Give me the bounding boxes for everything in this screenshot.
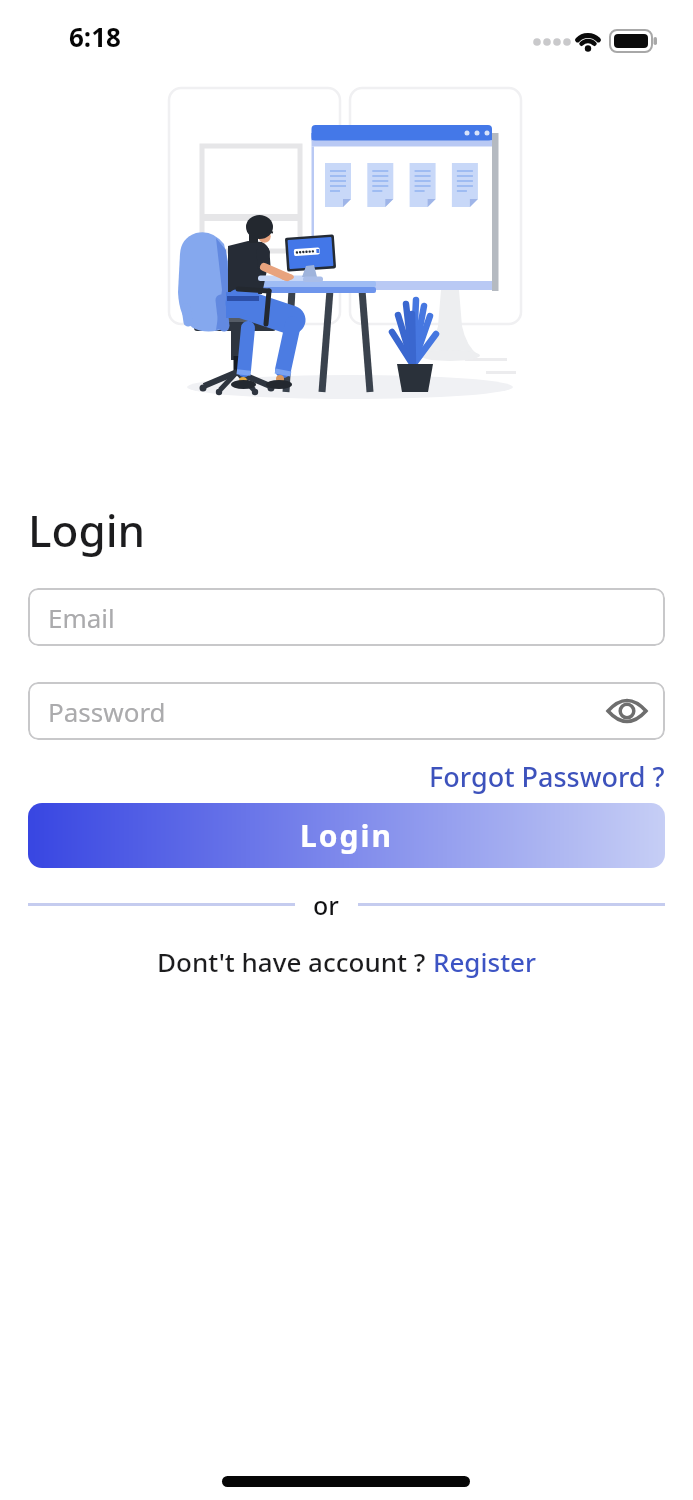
staticText: Dont't have account ? <box>157 944 433 979</box>
staticText: Password <box>48 694 166 729</box>
staticText: Login <box>28 500 146 560</box>
staticText: Email <box>48 600 115 635</box>
staticText: Register <box>433 944 537 979</box>
button[interactable]: Register <box>433 944 537 979</box>
button[interactable]: Login <box>28 803 665 868</box>
staticText: 6:18 <box>69 19 121 54</box>
button[interactable]: Email <box>28 588 665 646</box>
button[interactable]: Forgot Password ? <box>429 758 665 795</box>
button[interactable] <box>605 691 649 731</box>
staticText: Forgot Password ? <box>429 758 665 795</box>
staticText: Login <box>300 815 393 856</box>
staticText: or <box>313 888 339 922</box>
button[interactable]: Password <box>28 682 665 740</box>
